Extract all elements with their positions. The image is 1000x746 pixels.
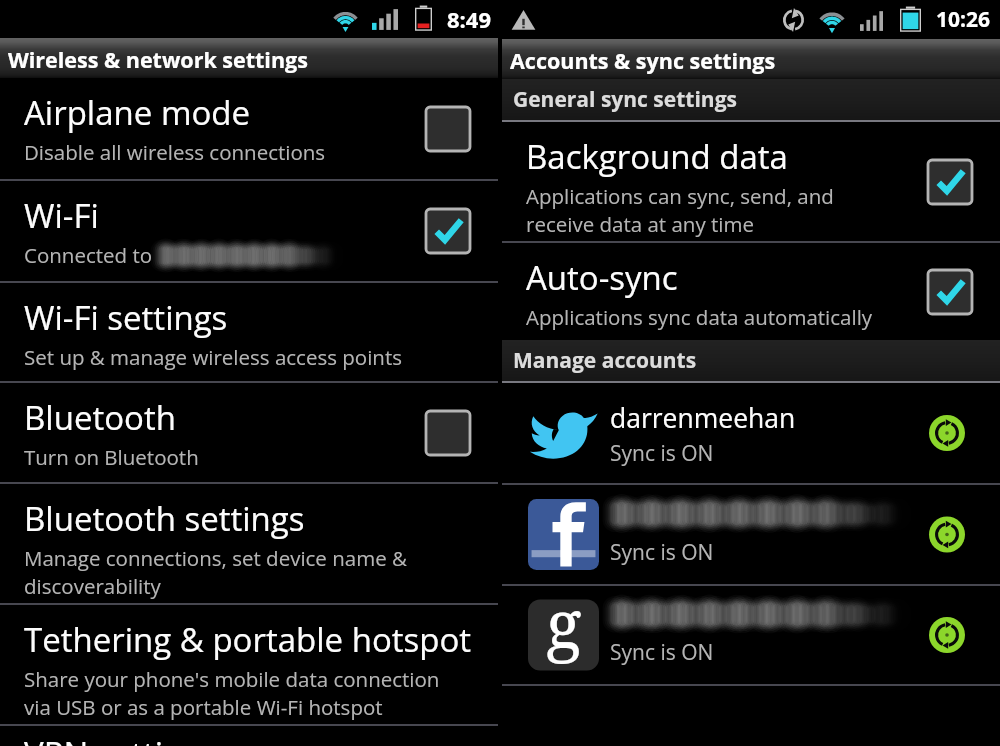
button[interactable]: Auto-sync (502, 243, 1000, 340)
button[interactable]: Background data (502, 122, 1000, 241)
button[interactable]: Airplane mode (0, 78, 498, 179)
button[interactable]: Tethering & portable hotspot (0, 605, 498, 724)
staticText: Turn on Bluetooth (24, 443, 199, 471)
staticText: Background data (526, 134, 788, 179)
staticText: Manage connections, set device name & (24, 544, 407, 572)
button[interactable]: Account, Sync is ON (502, 485, 1000, 584)
staticText: Applications can sync, send, and (526, 182, 834, 210)
button[interactable]: darrenmeehan, Sync is ON (502, 383, 1000, 483)
staticText: Disable all wireless connections (24, 138, 326, 166)
staticText: Manage accounts (513, 346, 697, 375)
staticText: Wi-Fi settings (24, 295, 228, 340)
button[interactable]: VPN settings (0, 686, 498, 746)
staticText: receive data at any time (526, 210, 754, 238)
button[interactable]: Bluetooth settings (0, 484, 498, 603)
staticText: Tethering & portable hotspot (24, 617, 472, 662)
staticText: Set up & manage wireless access points (24, 343, 402, 371)
staticText: Applications sync data automatically (526, 303, 873, 331)
staticText: 8:49 (447, 4, 492, 34)
staticText: Connected to (24, 241, 153, 269)
staticText: via USB or as a portable Wi-Fi hotspot (24, 693, 383, 721)
staticText: General sync settings (513, 85, 737, 114)
button[interactable]: Account, Sync is ON (502, 586, 1000, 684)
staticText: g (546, 577, 582, 667)
button[interactable]: Enabled checkbox (926, 158, 974, 206)
button[interactable]: Bluetooth (0, 383, 498, 482)
staticText: Sync is ON (610, 538, 714, 567)
other: Warning (511, 3, 536, 37)
button[interactable]: Enabled checkbox (424, 207, 472, 255)
button[interactable]: Wi-Fi (0, 181, 498, 281)
staticText: Accounts & sync settings (510, 46, 776, 75)
button[interactable]: Disabled checkbox (424, 105, 472, 153)
staticText: 10:26 (936, 5, 991, 34)
staticText: Auto-sync (526, 255, 678, 300)
button[interactable]: Enabled checkbox (926, 268, 974, 316)
staticText: Bluetooth settings (24, 496, 305, 541)
staticText: Wi-Fi (24, 193, 99, 238)
staticText: darrenmeehan (610, 400, 796, 436)
staticText: Airplane mode (24, 90, 251, 135)
button[interactable]: Wi-Fi settings (0, 283, 498, 381)
staticText: Wireless & network settings (8, 45, 308, 74)
button[interactable]: Disabled checkbox (424, 409, 472, 457)
staticText: Sync is ON (610, 439, 714, 468)
staticText: discoverability (24, 572, 161, 600)
staticText: Bluetooth (24, 395, 176, 440)
staticText: VPN settings (24, 731, 217, 746)
staticText: Sync is ON (610, 638, 714, 667)
staticText: Share your phone's mobile data connectio… (24, 665, 440, 693)
